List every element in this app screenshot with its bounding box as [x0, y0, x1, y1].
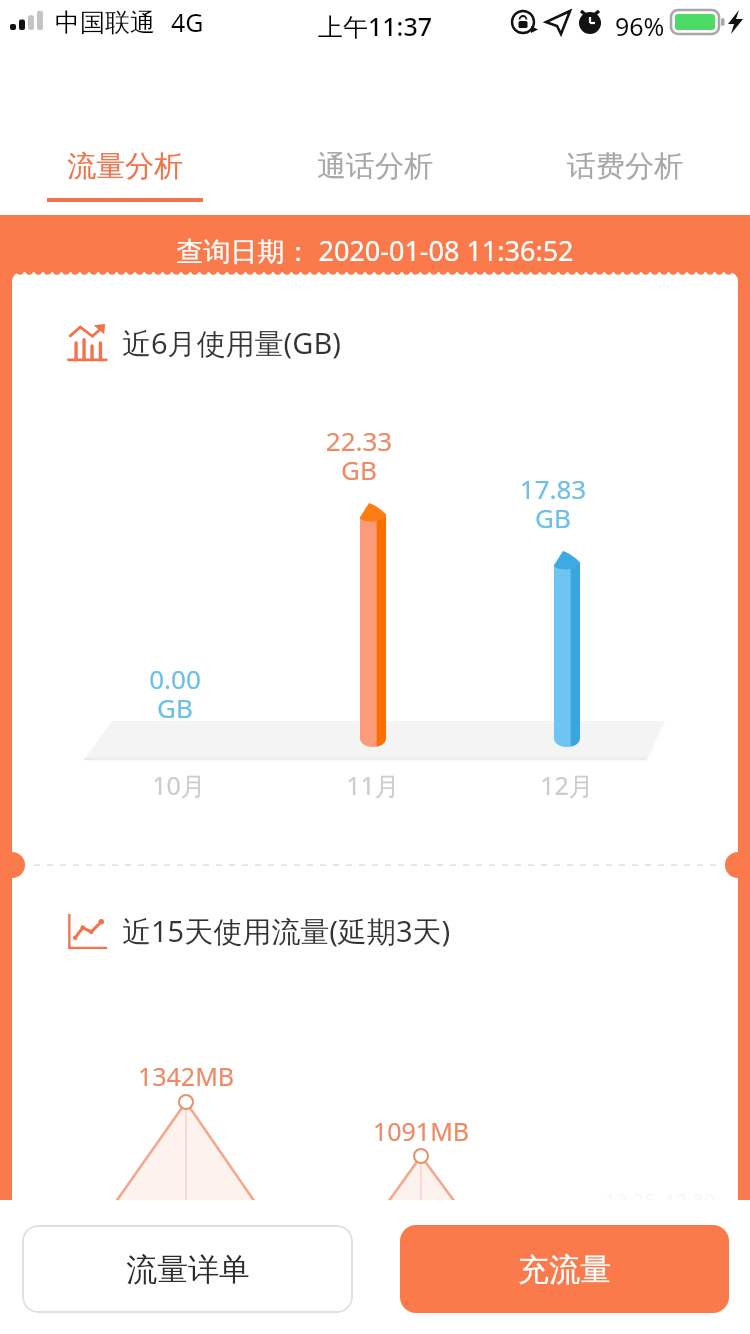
- button[interactable]: 流量详单: [22, 1225, 353, 1313]
- staticText: 11月: [313, 768, 433, 802]
- button[interactable]: 充流量: [400, 1225, 729, 1313]
- staticText: 通话分析: [317, 148, 433, 185]
- staticText: 22.33 GB: [299, 423, 419, 487]
- staticText: 1342MB: [106, 1059, 266, 1093]
- staticText: 17.83 GB: [493, 471, 613, 535]
- staticText: 流量分析: [67, 148, 183, 185]
- button[interactable]: 话费分析: [500, 134, 750, 210]
- staticText: 近6月使用量(GB): [122, 323, 341, 363]
- staticText: 近15天使用流量(延期3天): [122, 911, 451, 951]
- staticText: 0.00 GB: [115, 661, 235, 725]
- staticText: 流量详单: [126, 1250, 250, 1289]
- staticText: 12月: [507, 768, 627, 802]
- button[interactable]: 流量分析: [0, 134, 250, 210]
- staticText: 充流量: [518, 1250, 611, 1289]
- button[interactable]: 通话分析: [250, 134, 500, 210]
- staticText: 10月: [119, 768, 239, 802]
- staticText: 4G: [171, 5, 204, 39]
- staticText: 话费分析: [567, 148, 683, 185]
- staticText: 1091MB: [341, 1114, 501, 1148]
- staticText: 96%: [615, 9, 665, 43]
- staticText: 中国联通: [55, 7, 155, 38]
- staticText: 查询日期： 2020-01-08 11:36:52: [0, 232, 750, 269]
- staticText: 上午11:37: [0, 9, 750, 43]
